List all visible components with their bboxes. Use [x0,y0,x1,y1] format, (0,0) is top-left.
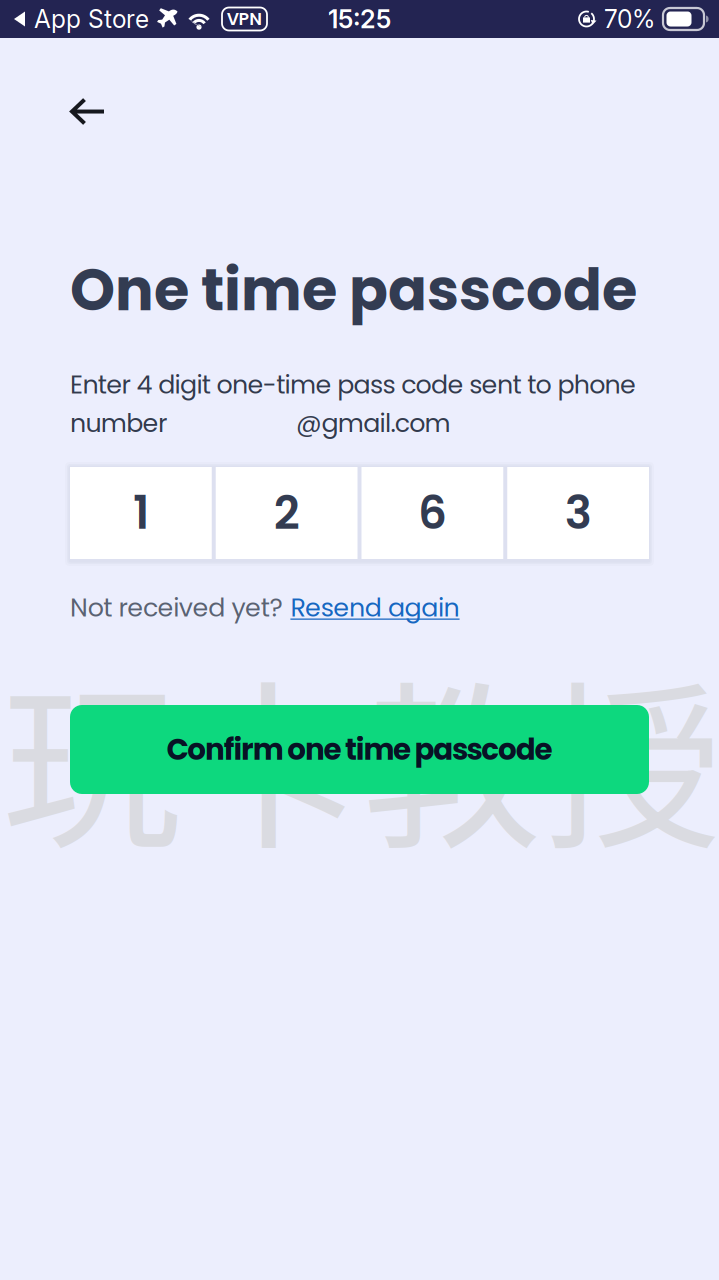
staticText: VPN [227,7,262,31]
staticText: Not received yet? [70,590,282,625]
button[interactable]: Back [52,80,124,143]
staticText: 6 [418,481,447,545]
button[interactable]: Resend again [290,590,460,625]
button[interactable]: Confirm one time passcode [70,705,649,794]
staticText: 1 [133,481,149,545]
staticText: 15:25 [328,4,391,34]
staticText: One time passcode [70,250,637,330]
staticText: 3 [565,481,592,545]
staticText: @gmail.com [296,405,451,441]
staticText: 玩卡教授 [2,625,719,886]
staticText: Enter 4 digit one-time pass code sent to… [70,367,636,402]
staticText: 70% [604,4,655,34]
staticText: number [70,405,167,441]
staticText: Resend again [290,590,460,625]
staticText: Confirm one time passcode [167,729,552,770]
staticText: App Store [34,4,149,34]
staticText: 2 [274,481,300,545]
